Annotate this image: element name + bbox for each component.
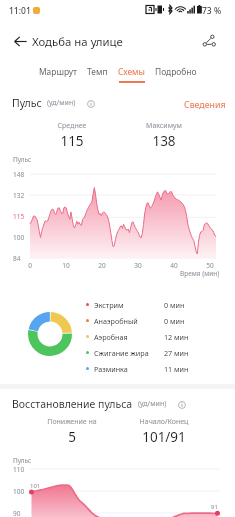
staticText: 101/91 <box>119 428 209 446</box>
button[interactable]: Маршрут <box>34 64 82 85</box>
staticText: 30 <box>132 261 144 270</box>
staticText: 50 <box>204 261 216 270</box>
staticText: Среднее <box>27 121 117 131</box>
staticText: Начало/Конец <box>119 417 209 427</box>
button[interactable]: Разминка <box>84 361 194 376</box>
staticText: Время (мин) <box>180 269 220 278</box>
staticText: 115 <box>27 132 117 150</box>
staticText: 5 <box>27 428 117 446</box>
staticText: 0 <box>24 261 36 270</box>
staticText: 84 <box>13 254 21 263</box>
button[interactable]: Share <box>196 28 222 54</box>
staticText: Пульс <box>13 155 32 164</box>
staticText: 20 <box>96 261 108 270</box>
staticText: 115 <box>13 212 25 221</box>
staticText: Пульс <box>12 96 42 110</box>
staticText: Подробно <box>155 66 197 77</box>
staticText: Аэробная <box>94 332 128 342</box>
staticText: 101 <box>30 482 41 490</box>
staticText: 73 % <box>202 5 222 17</box>
staticText: Экстрим <box>94 300 124 310</box>
staticText: Максимум <box>119 121 209 131</box>
staticText: 11:01 <box>9 5 31 17</box>
staticText: 0 мин <box>164 300 185 310</box>
button[interactable]: Схемы <box>113 64 150 85</box>
staticText: Ходьба на улице <box>32 34 123 50</box>
staticText: 12 мин <box>164 332 189 342</box>
staticText: Схемы <box>118 66 145 77</box>
button[interactable]: Темп <box>82 64 113 85</box>
staticText: Пульс <box>13 456 32 465</box>
staticText: Анаэробный <box>94 316 138 326</box>
staticText: (уд/мин) <box>138 399 167 409</box>
button[interactable]: Аэробная <box>84 329 194 344</box>
staticText: 110 <box>13 465 25 474</box>
button[interactable]: Back <box>7 28 33 54</box>
staticText: Сжигание жира <box>94 348 149 358</box>
staticText: 91 <box>211 503 218 511</box>
staticText: 11 мин <box>164 364 189 374</box>
staticText: 10 <box>60 261 72 270</box>
staticText: Сведения <box>184 99 226 111</box>
staticText: 132 <box>13 191 25 200</box>
staticText: Восстановление пульса <box>12 397 133 411</box>
staticText: Понижение на <box>27 417 117 427</box>
staticText: Темп <box>87 66 108 77</box>
button[interactable]: Экстрим <box>84 297 194 312</box>
staticText: 27 мин <box>164 348 189 358</box>
staticText: (уд/мин) <box>47 98 76 108</box>
button[interactable]: Сжигание жира <box>84 345 194 360</box>
staticText: 100 <box>13 487 25 496</box>
staticText: Маршрут <box>39 66 77 77</box>
staticText: 0 мин <box>164 316 185 326</box>
button[interactable]: Анаэробный <box>84 313 194 328</box>
staticText: 138 <box>119 132 209 150</box>
button[interactable]: Сведения <box>181 97 229 113</box>
staticText: Разминка <box>94 364 128 374</box>
staticText: 40 <box>168 261 180 270</box>
staticText: 148 <box>13 170 25 179</box>
staticText: 90 <box>13 509 21 517</box>
staticText: 100 <box>13 233 25 242</box>
button[interactable]: Подробно <box>150 64 202 85</box>
